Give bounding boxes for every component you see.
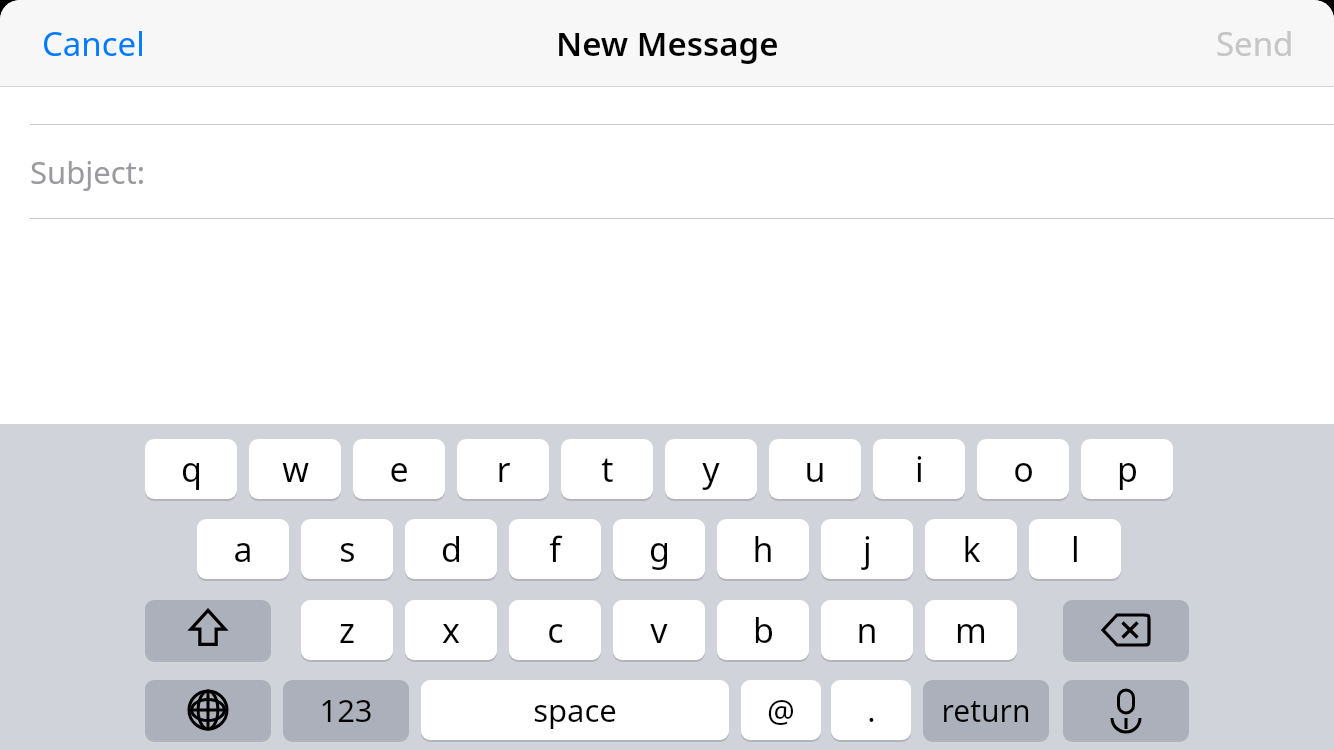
button[interactable]: Change keyboard: [145, 680, 271, 740]
button[interactable]: i: [873, 439, 965, 499]
staticText: k: [962, 526, 981, 572]
button[interactable]: Dictate: [1063, 680, 1189, 740]
button[interactable]: g: [613, 519, 705, 579]
staticText: b: [753, 607, 774, 653]
staticText: j: [863, 526, 872, 572]
button[interactable]: y: [665, 439, 757, 499]
button[interactable]: Subject:: [0, 125, 1334, 218]
button[interactable]: n: [821, 600, 913, 660]
staticText: m: [955, 607, 987, 653]
button[interactable]: u: [769, 439, 861, 499]
staticText: return: [941, 690, 1031, 731]
staticText: @: [767, 689, 795, 731]
staticText: o: [1013, 446, 1034, 492]
button[interactable]: e: [353, 439, 445, 499]
button[interactable]: w: [249, 439, 341, 499]
staticText: y: [702, 446, 720, 492]
button[interactable]: Backspace: [1063, 600, 1189, 660]
button[interactable]: @: [741, 680, 821, 740]
staticText: q: [181, 446, 202, 492]
button[interactable]: h: [717, 519, 809, 579]
button[interactable]: p: [1081, 439, 1173, 499]
staticText: l: [1071, 526, 1080, 572]
button[interactable]: Shift: [145, 600, 271, 660]
button[interactable]: Cancel: [0, 0, 187, 87]
staticText: 123: [319, 689, 373, 731]
button[interactable]: t: [561, 439, 653, 499]
staticText: x: [442, 607, 460, 653]
staticText: a: [233, 526, 253, 572]
button[interactable]: s: [301, 519, 393, 579]
staticText: Send: [1216, 21, 1294, 66]
staticText: space: [533, 689, 617, 731]
button[interactable]: .: [831, 680, 911, 740]
staticText: g: [649, 526, 670, 572]
button[interactable]: v: [613, 600, 705, 660]
button[interactable]: q: [145, 439, 237, 499]
button[interactable]: z: [301, 600, 393, 660]
staticText: f: [549, 526, 561, 572]
staticText: e: [389, 446, 409, 492]
staticText: New Message: [556, 21, 779, 66]
button[interactable]: return: [923, 680, 1049, 740]
button[interactable]: a: [197, 519, 289, 579]
button[interactable]: space: [421, 680, 729, 740]
button[interactable]: m: [925, 600, 1017, 660]
button[interactable]: k: [925, 519, 1017, 579]
staticText: s: [339, 526, 356, 572]
staticText: p: [1117, 446, 1138, 492]
staticText: Cancel: [42, 21, 145, 66]
button[interactable]: l: [1029, 519, 1121, 579]
staticText: Subject:: [30, 151, 146, 193]
staticText: d: [441, 526, 462, 572]
staticText: t: [601, 446, 614, 492]
staticText: u: [804, 446, 826, 492]
staticText: i: [915, 446, 924, 492]
staticText: .: [867, 689, 876, 731]
staticText: n: [856, 607, 878, 653]
button[interactable]: d: [405, 519, 497, 579]
staticText: c: [547, 607, 564, 653]
staticText: v: [650, 607, 668, 653]
staticText: h: [752, 526, 774, 572]
button[interactable]: o: [977, 439, 1069, 499]
button[interactable]: r: [457, 439, 549, 499]
button[interactable]: j: [821, 519, 913, 579]
button[interactable]: Send: [1176, 0, 1334, 87]
button[interactable]: f: [509, 519, 601, 579]
button[interactable]: x: [405, 600, 497, 660]
button[interactable]: b: [717, 600, 809, 660]
button[interactable]: c: [509, 600, 601, 660]
button[interactable]: 123: [283, 680, 409, 740]
staticText: r: [496, 446, 511, 492]
staticText: z: [339, 607, 355, 653]
staticText: w: [282, 446, 309, 492]
